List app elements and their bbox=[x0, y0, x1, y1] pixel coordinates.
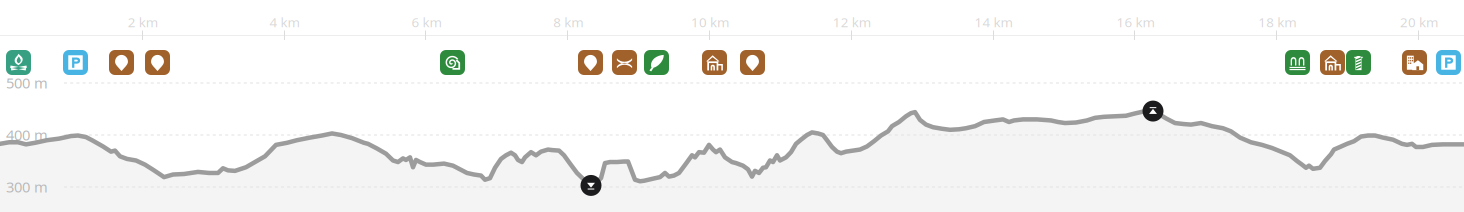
button[interactable]: Point of interest bbox=[109, 50, 134, 75]
staticText: 2 km bbox=[128, 13, 158, 31]
button[interactable]: Parking bbox=[63, 50, 88, 75]
staticText: 12 km bbox=[833, 13, 871, 31]
button[interactable]: Point of interest bbox=[740, 50, 765, 75]
staticText: 300 m bbox=[6, 177, 48, 196]
staticText: 8 km bbox=[553, 13, 583, 31]
staticText: 20 km bbox=[1400, 13, 1438, 31]
button[interactable]: Point of interest bbox=[145, 50, 170, 75]
button[interactable]: Parking bbox=[1436, 50, 1461, 75]
button[interactable]: Bridge bbox=[612, 50, 637, 75]
button[interactable]: Historic site bbox=[1320, 50, 1345, 75]
staticText: 10 km bbox=[691, 13, 729, 31]
staticText: 16 km bbox=[1116, 13, 1154, 31]
button[interactable]: Historic site bbox=[702, 50, 727, 75]
staticText: 18 km bbox=[1258, 13, 1296, 31]
button[interactable]: Highest point bbox=[1142, 101, 1163, 122]
button[interactable]: Campsite bbox=[6, 50, 31, 75]
button[interactable]: Village bbox=[1402, 50, 1427, 75]
staticText: 500 m bbox=[6, 73, 48, 92]
staticText: 6 km bbox=[411, 13, 441, 31]
staticText: 400 m bbox=[6, 125, 48, 144]
button[interactable]: Point of interest bbox=[578, 50, 603, 75]
button[interactable]: Natural feature bbox=[644, 50, 669, 75]
staticText: 14 km bbox=[975, 13, 1013, 31]
button[interactable]: Lowest point bbox=[580, 175, 601, 196]
button[interactable]: Cave bbox=[1285, 50, 1310, 75]
button[interactable]: Nature reserve bbox=[440, 50, 465, 75]
staticText: 4 km bbox=[270, 13, 300, 31]
button[interactable]: Tower bbox=[1346, 50, 1371, 75]
